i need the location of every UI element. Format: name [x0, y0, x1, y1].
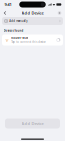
- staticText: Tap to connect this device: [11, 40, 46, 44]
- staticText: Router WIFI: [11, 36, 28, 40]
- staticText: Add Device: [21, 10, 43, 16]
- staticText: Devices found: [4, 29, 24, 32]
- button[interactable]: Add manually: [2, 17, 63, 25]
- button[interactable]: Add Device: [5, 118, 60, 128]
- button[interactable]: Info: [56, 9, 63, 17]
- button[interactable]: Back: [2, 9, 8, 17]
- staticText: Add Device: [21, 121, 43, 126]
- staticText: 9:41: [4, 2, 11, 7]
- staticText: Add manually: [9, 19, 27, 23]
- button[interactable]: Router WIFI: [2, 34, 63, 45]
